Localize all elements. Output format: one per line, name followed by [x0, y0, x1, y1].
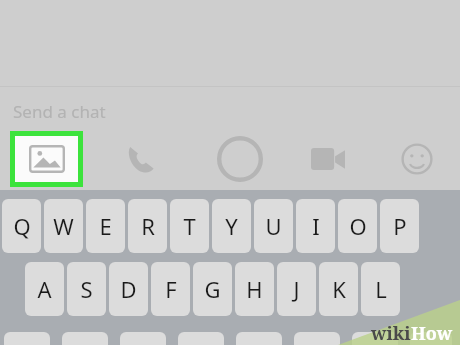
- button[interactable]: E: [86, 199, 125, 253]
- button[interactable]: Send a chat: [0, 95, 460, 127]
- button[interactable]: [4, 332, 50, 345]
- staticText: U: [265, 211, 282, 241]
- staticText: G: [204, 274, 221, 304]
- button[interactable]: L: [361, 262, 400, 316]
- button[interactable]: F: [151, 262, 190, 316]
- staticText: S: [80, 274, 93, 304]
- button[interactable]: Video call: [300, 131, 356, 187]
- staticText: O: [349, 211, 367, 241]
- button[interactable]: Stickers: [389, 131, 445, 187]
- staticText: A: [37, 274, 52, 304]
- button[interactable]: [62, 332, 108, 345]
- button[interactable]: [120, 332, 166, 345]
- staticText: J: [293, 274, 300, 304]
- button[interactable]: Send a photo: [15, 136, 78, 182]
- button[interactable]: W: [44, 199, 83, 253]
- staticText: K: [332, 274, 346, 304]
- staticText: Y: [225, 211, 238, 241]
- button[interactable]: [294, 332, 340, 345]
- button[interactable]: T: [170, 199, 209, 253]
- button[interactable]: [352, 332, 398, 345]
- button[interactable]: [178, 332, 224, 345]
- button[interactable]: P: [380, 199, 419, 253]
- staticText: P: [393, 211, 407, 241]
- button[interactable]: Y: [212, 199, 251, 253]
- button[interactable]: A: [25, 262, 64, 316]
- button[interactable]: J: [277, 262, 316, 316]
- staticText: T: [183, 211, 196, 241]
- button[interactable]: G: [193, 262, 232, 316]
- staticText: I: [312, 211, 320, 241]
- button[interactable]: R: [128, 199, 167, 253]
- button[interactable]: [410, 332, 452, 345]
- button[interactable]: U: [254, 199, 293, 253]
- staticText: H: [246, 274, 263, 304]
- button[interactable]: I: [296, 199, 335, 253]
- staticText: E: [99, 211, 112, 241]
- button[interactable]: Q: [2, 199, 41, 253]
- button[interactable]: Call: [113, 131, 169, 187]
- staticText: wiki: [371, 321, 411, 345]
- button[interactable]: O: [338, 199, 377, 253]
- staticText: R: [141, 211, 155, 241]
- staticText: F: [165, 274, 177, 304]
- button[interactable]: K: [319, 262, 358, 316]
- staticText: How: [411, 321, 453, 345]
- button[interactable]: H: [235, 262, 274, 316]
- staticText: Send a chat: [13, 100, 106, 123]
- button[interactable]: S: [67, 262, 106, 316]
- button[interactable]: Camera: [212, 131, 268, 187]
- staticText: Q: [13, 211, 31, 241]
- button[interactable]: [236, 332, 282, 345]
- staticText: D: [120, 274, 137, 304]
- staticText: W: [53, 211, 74, 241]
- button[interactable]: D: [109, 262, 148, 316]
- staticText: L: [375, 274, 387, 304]
